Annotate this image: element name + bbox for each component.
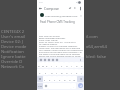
button[interactable]: Keyboard tool — [55, 58, 58, 61]
staticText: w — [42, 64, 44, 67]
staticText: x64,arm64 — [86, 44, 107, 49]
button[interactable]: d — [49, 69, 54, 75]
button[interactable]: More options — [78, 6, 82, 10]
staticText: h — [66, 71, 68, 74]
button[interactable]: x — [47, 76, 52, 82]
button[interactable]: e — [45, 62, 49, 68]
button[interactable]: q — [37, 62, 41, 68]
staticText: a — [39, 71, 41, 74]
staticText: Notification — [1, 49, 24, 54]
button[interactable]: g — [59, 69, 64, 75]
staticText: 9:41 — [39, 1, 44, 4]
staticText: p — [81, 64, 83, 67]
button[interactable]: Emoji — [43, 83, 48, 89]
staticText: x — [49, 78, 51, 81]
staticText: u — [66, 64, 68, 67]
staticText: To: Device Support <support@centegix.com… — [39, 43, 83, 45]
button[interactable]: n — [67, 76, 72, 82]
staticText: Date: 22 March 2024 at 11:04:38 GMT — [39, 41, 76, 43]
staticText: Device mode — [1, 44, 27, 49]
staticText: CENTEGIX 2 — [1, 29, 25, 34]
staticText: . — [73, 85, 74, 88]
button[interactable]: m — [72, 76, 77, 82]
staticText: y — [61, 64, 63, 67]
button[interactable]: k — [74, 69, 79, 75]
staticText: From: Cody Mercer <cody.mercer@gmail.com… — [39, 39, 83, 41]
staticText: t — [56, 64, 57, 67]
staticText: v — [59, 78, 61, 81]
staticText: n — [69, 78, 71, 81]
button[interactable]: Backspace — [77, 76, 84, 82]
staticText: your review. Please confirm the assignme… — [39, 49, 83, 51]
staticText: User's email — [1, 34, 26, 39]
button[interactable]: Keyboard tool — [51, 58, 54, 61]
button[interactable]: v — [57, 76, 62, 82]
staticText: e — [46, 64, 48, 67]
button[interactable]: h — [64, 69, 69, 75]
staticText: r — [51, 64, 52, 67]
button[interactable]: Keyboard tool — [47, 58, 50, 61]
button[interactable]: t — [54, 62, 59, 68]
staticText: Network Co — [1, 64, 25, 69]
staticText: j — [71, 71, 72, 74]
staticText: and notify the site leads once complete.… — [39, 51, 82, 53]
staticText: Begin forwarded message: — [39, 37, 66, 39]
staticText: ?123 — [38, 85, 43, 88]
button[interactable]: o — [74, 62, 79, 68]
button[interactable]: Back — [38, 6, 43, 11]
staticText: f — [56, 71, 57, 74]
button[interactable]: More keyboard options — [79, 58, 82, 61]
staticText: m — [73, 78, 76, 81]
button[interactable]: cody.mercer@centegix.com — [40, 11, 82, 19]
staticText: cody.mercer@centegix.com — [45, 14, 78, 17]
button[interactable]: u — [64, 62, 69, 68]
staticText: i — [71, 64, 72, 67]
button[interactable]: f — [54, 69, 59, 75]
staticText: before the rollout window closes on Frid… — [39, 55, 82, 57]
staticText: Compose — [44, 6, 60, 11]
staticText: l — [81, 71, 82, 74]
button[interactable]: b — [62, 76, 67, 82]
staticText: q — [38, 64, 40, 67]
button[interactable]: Send — [73, 6, 77, 10]
staticText: s — [45, 71, 47, 74]
button[interactable]: l — [79, 69, 84, 75]
button[interactable]: Expand recipients — [79, 14, 82, 17]
button[interactable]: j — [69, 69, 74, 75]
staticText: Override D — [1, 59, 23, 64]
staticText: d — [51, 71, 53, 74]
staticText: Hello team, the new device list is attac… — [39, 47, 83, 49]
staticText: Device 02: J — [1, 39, 24, 44]
staticText: k — [76, 71, 78, 74]
staticText: Subject: Phone CMS Tracking Inventory — [39, 45, 78, 47]
button[interactable]: Attach file — [68, 6, 72, 10]
staticText: Ignore batte — [1, 54, 26, 59]
staticText: o — [76, 64, 78, 67]
button[interactable]: a — [37, 69, 43, 75]
button[interactable]: Shift — [37, 76, 43, 82]
staticText: bled: false — [86, 54, 107, 59]
button[interactable]: i — [69, 62, 74, 68]
staticText: Fwd: Phone CMS Tracking — [40, 20, 75, 24]
staticText: c — [54, 78, 56, 81]
staticText: il.com — [86, 34, 98, 39]
button[interactable]: y — [59, 62, 64, 68]
button[interactable]: z — [43, 76, 47, 82]
staticText: b — [64, 78, 66, 81]
button[interactable]: p — [79, 62, 84, 68]
staticText: Sent from my iPhone — [39, 35, 60, 37]
staticText: g — [61, 71, 63, 74]
button[interactable]: c — [52, 76, 57, 82]
button[interactable]: Symbols — [37, 83, 43, 89]
button[interactable]: s — [43, 69, 49, 75]
button[interactable]: w — [41, 62, 45, 68]
staticText: me know if anything needs to be updated — [39, 53, 80, 55]
staticText: z — [44, 78, 46, 81]
button[interactable]: r — [49, 62, 54, 68]
button[interactable]: Enter — [78, 83, 83, 88]
button[interactable]: Keyboard tool — [43, 58, 46, 61]
button[interactable]: Keyboard tool — [39, 58, 42, 61]
